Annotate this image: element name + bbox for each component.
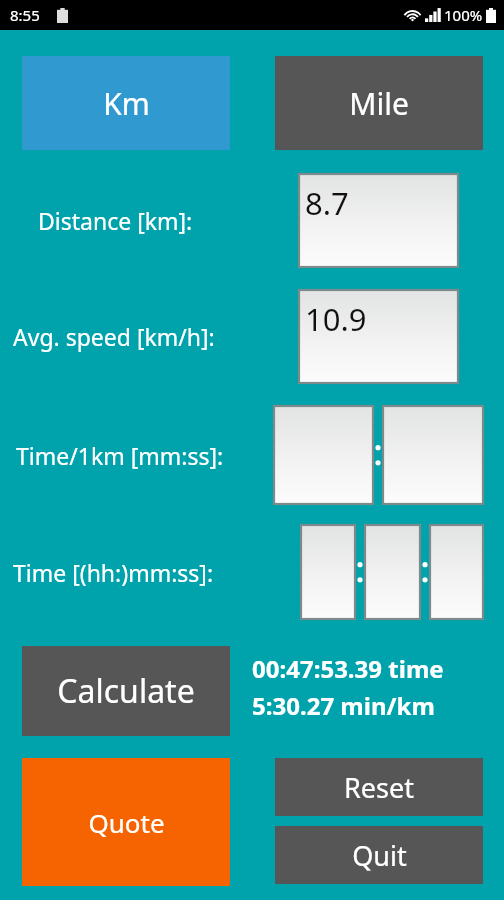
button[interactable]: Reset (275, 758, 483, 816)
button[interactable]: Calculate (22, 646, 230, 736)
button[interactable]: Input field (430, 525, 483, 619)
button[interactable]: Input field (274, 406, 373, 504)
staticText: 10.9 (305, 298, 367, 340)
staticText: Distance [km]: (38, 205, 193, 236)
staticText: Calculate (57, 669, 195, 713)
button[interactable]: Quit (275, 826, 483, 884)
button[interactable]: Input field (299, 290, 458, 383)
staticText: Time/1km [mm:ss]: (16, 440, 224, 471)
button[interactable]: Input field (383, 406, 483, 504)
staticText: Quote (88, 805, 165, 840)
staticText: Km (103, 83, 150, 124)
staticText: 00:47:53.39 time (252, 652, 444, 685)
staticText: 5:30.27 min/km (252, 689, 435, 722)
button[interactable]: Input field (301, 525, 355, 619)
button[interactable]: Mile (275, 56, 483, 150)
staticText: Avg. speed [km/h]: (13, 321, 215, 352)
button[interactable]: Quote (22, 758, 230, 886)
staticText: 8:55 (10, 5, 40, 25)
staticText: Quit (352, 837, 407, 874)
staticText: Reset (344, 769, 414, 806)
staticText: 100% (444, 5, 483, 25)
button[interactable]: Input field (365, 525, 420, 619)
button[interactable]: Km (22, 56, 230, 150)
staticText: Mile (349, 83, 409, 124)
button[interactable]: Input field (299, 174, 458, 267)
staticText: 8.7 (305, 182, 349, 224)
staticText: Time [(hh:)mm:ss]: (13, 557, 214, 588)
